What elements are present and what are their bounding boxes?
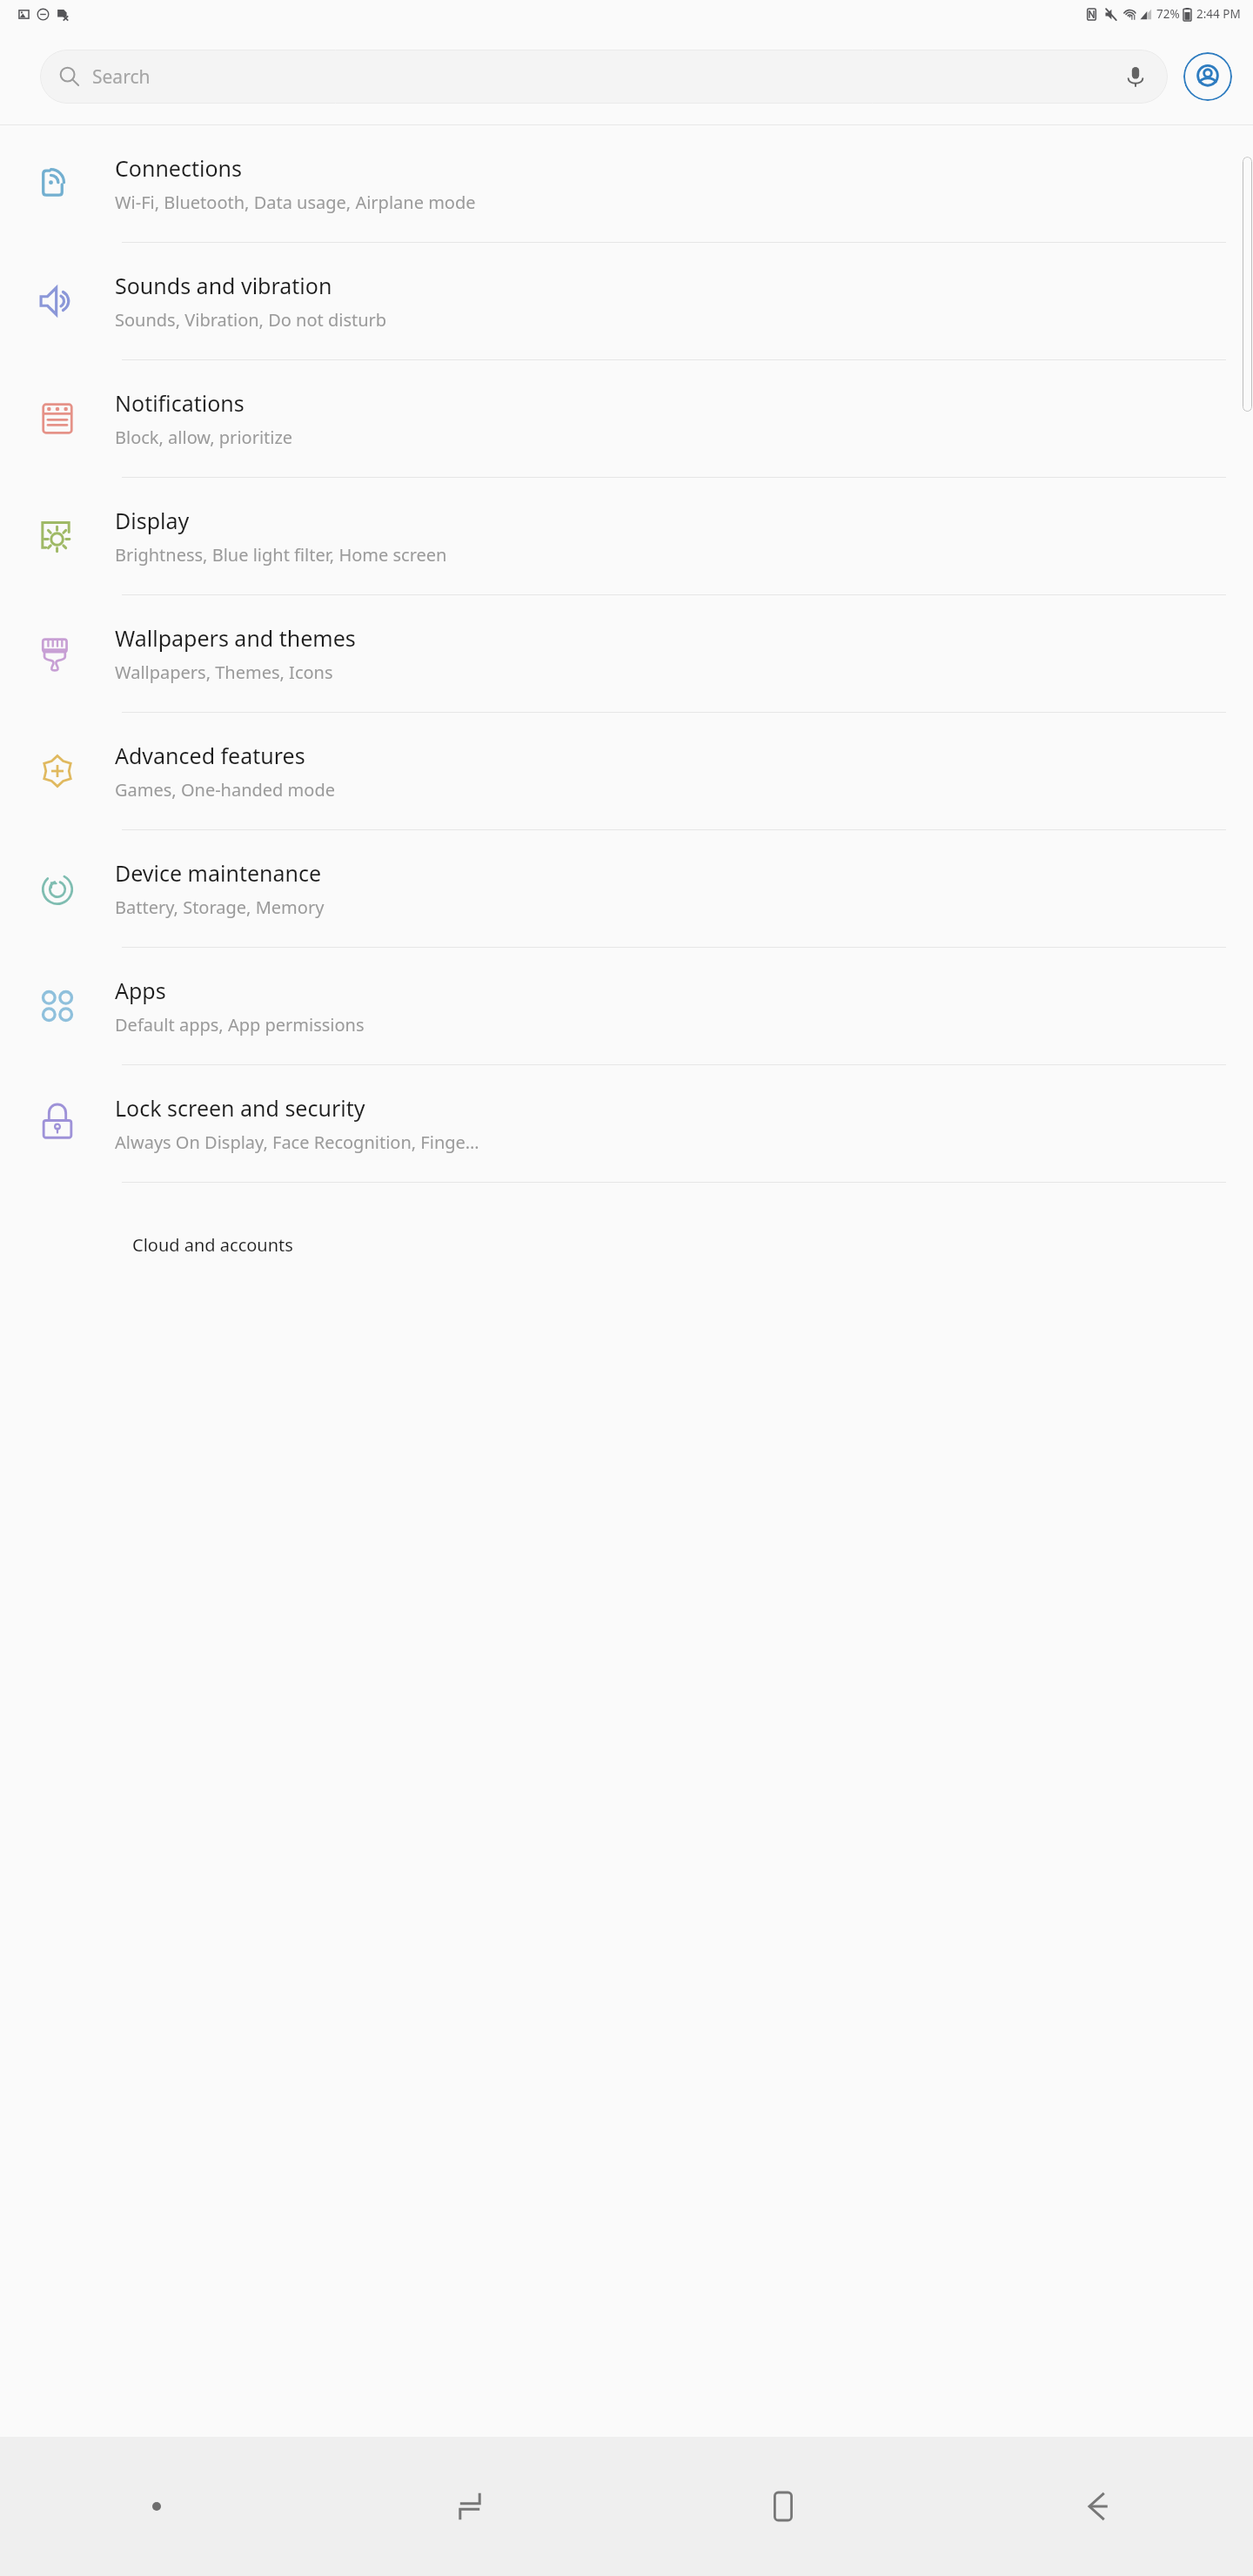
staticText: Sounds, Vibration, Do not disturb [115, 308, 387, 332]
staticText: Wi-Fi, Bluetooth, Data usage, Airplane m… [115, 191, 476, 214]
staticText: Cloud and accounts [132, 1233, 293, 1257]
button[interactable]: Recents [313, 2437, 626, 2576]
staticText: Brightness, Blue light filter, Home scre… [115, 543, 447, 567]
button[interactable]: Notifications [0, 360, 1253, 477]
staticText: Connections [115, 153, 242, 183]
staticText: Always On Display, Face Recognition, Fin… [115, 1130, 479, 1154]
staticText: Battery, Storage, Memory [115, 896, 325, 919]
button[interactable]: Advanced features [0, 713, 1253, 829]
staticText: Notifications [115, 388, 245, 418]
staticText: Sounds and vibration [115, 271, 332, 300]
button[interactable]: Account [1183, 52, 1232, 101]
button[interactable]: Sounds and vibration [0, 243, 1253, 359]
staticText: Search [92, 64, 151, 90]
button[interactable]: Back [940, 2437, 1253, 2576]
button[interactable]: Lock screen and security [0, 1065, 1253, 1182]
button[interactable]: Device maintenance [0, 830, 1253, 947]
button[interactable]: Voice search [1122, 64, 1149, 90]
staticText: Lock screen and security [115, 1093, 365, 1123]
staticText: Display [115, 506, 190, 535]
button[interactable]: Display [0, 478, 1253, 594]
staticText: Default apps, App permissions [115, 1013, 365, 1036]
staticText: Games, One-handed mode [115, 778, 335, 802]
staticText: Apps [115, 976, 166, 1005]
staticText: Device maintenance [115, 858, 322, 888]
staticText: Block, allow, prioritize [115, 426, 293, 449]
staticText: 72% [1156, 6, 1180, 22]
button[interactable]: Connections [0, 125, 1253, 242]
button[interactable]: Apps [0, 948, 1253, 1064]
button[interactable]: Home [626, 2437, 940, 2576]
button[interactable]: Wallpapers and themes [0, 595, 1253, 712]
staticText: 2:44 PM [1196, 6, 1241, 22]
staticText: Advanced features [115, 741, 305, 770]
button[interactable]: Search [40, 50, 1168, 104]
staticText: Wallpapers and themes [115, 623, 356, 653]
staticText: Wallpapers, Themes, Icons [115, 661, 333, 684]
